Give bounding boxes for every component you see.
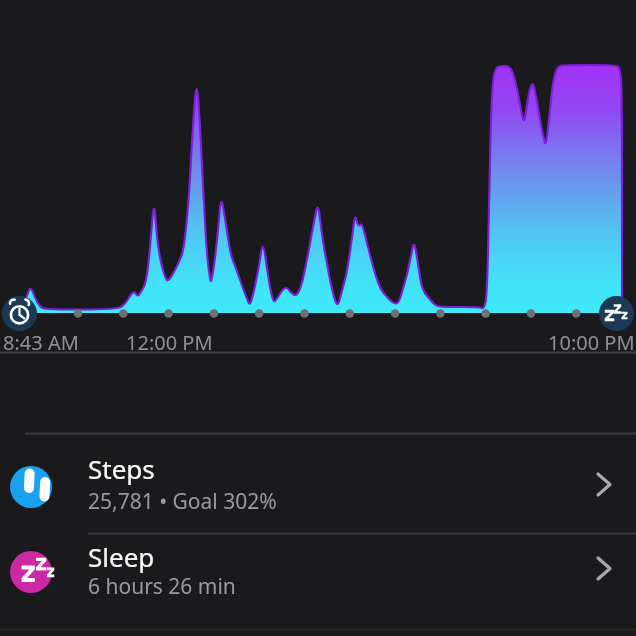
staticText: Sleep bbox=[88, 539, 155, 574]
staticText: Steps bbox=[88, 451, 155, 486]
staticText: 8:43 AM bbox=[3, 329, 79, 356]
button[interactable]: Steps bbox=[0, 434, 636, 533]
staticText: 12:00 PM bbox=[126, 329, 213, 356]
staticText: 10:00 PM bbox=[548, 329, 635, 356]
staticText: 6 hours 26 min bbox=[88, 572, 236, 601]
button[interactable]: Sleep bbox=[0, 533, 636, 629]
staticText: 25,781 • Goal 302% bbox=[88, 487, 277, 516]
